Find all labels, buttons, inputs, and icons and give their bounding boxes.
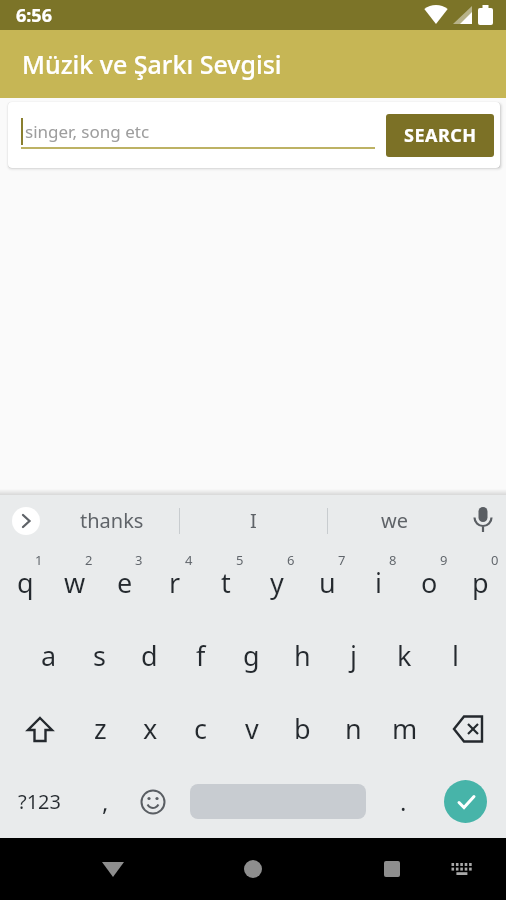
button[interactable] [89, 845, 137, 893]
button[interactable]: singer, song etc [8, 102, 386, 168]
button[interactable] [368, 845, 416, 893]
button[interactable]: g [226, 619, 277, 692]
button[interactable]: k [379, 619, 430, 692]
staticText: q [17, 564, 34, 601]
button[interactable] [174, 765, 382, 838]
staticText: 9 [440, 551, 448, 569]
button[interactable]: z [75, 692, 125, 765]
staticText: 4 [185, 551, 193, 569]
staticText: . [400, 785, 407, 818]
staticText: l [452, 637, 459, 674]
button[interactable] [229, 845, 277, 893]
staticText: p [472, 564, 489, 601]
button[interactable] [460, 495, 506, 546]
staticText: e [117, 564, 133, 601]
staticText: thanks [80, 507, 144, 534]
button[interactable]: q [0, 546, 50, 619]
button[interactable]: SEARCH [386, 114, 494, 157]
button[interactable]: l [430, 619, 481, 692]
staticText: n [345, 710, 362, 747]
staticText: d [141, 637, 158, 674]
button[interactable]: t [200, 546, 251, 619]
staticText: t [221, 564, 231, 601]
staticText: g [243, 637, 260, 674]
staticText: we [381, 507, 408, 534]
button[interactable]: y [251, 546, 302, 619]
staticText: 3 [135, 551, 143, 569]
staticText: 1 [35, 551, 43, 569]
staticText: y [270, 564, 284, 601]
staticText: x [143, 710, 158, 747]
staticText: k [397, 637, 412, 674]
button[interactable]: I [180, 495, 327, 546]
button[interactable]: e [100, 546, 150, 619]
button[interactable]: r [150, 546, 200, 619]
staticText: u [319, 564, 336, 601]
staticText: m [392, 710, 418, 747]
button[interactable]: b [277, 692, 328, 765]
button[interactable]: w [50, 546, 100, 619]
button[interactable]: x [125, 692, 175, 765]
staticText: h [294, 637, 311, 674]
button[interactable] [12, 507, 40, 535]
button[interactable]: u [302, 546, 353, 619]
button[interactable]: a [24, 619, 74, 692]
button[interactable]: d [124, 619, 175, 692]
button[interactable]: o [404, 546, 455, 619]
button[interactable]: j [328, 619, 379, 692]
staticText: singer, song etc [25, 120, 150, 143]
button[interactable]: i [353, 546, 404, 619]
staticText: SEARCH [404, 123, 477, 148]
staticText: o [421, 564, 438, 601]
staticText: ?123 [18, 788, 61, 815]
button[interactable]: ?123 [0, 765, 78, 838]
staticText: b [294, 710, 311, 747]
staticText: r [169, 564, 181, 601]
staticText: 7 [338, 551, 346, 569]
staticText: I [250, 507, 257, 534]
staticText: , [102, 785, 109, 818]
staticText: 6 [287, 551, 295, 569]
button[interactable]: h [277, 619, 328, 692]
staticText: z [94, 710, 107, 747]
staticText: w [64, 564, 86, 601]
staticText: s [93, 637, 106, 674]
staticText: 0 [491, 551, 499, 569]
staticText: v [245, 710, 259, 747]
button[interactable] [440, 847, 484, 891]
button[interactable]: n [328, 692, 379, 765]
button[interactable]: p [455, 546, 506, 619]
button[interactable] [132, 765, 174, 838]
staticText: 5 [236, 551, 244, 569]
button[interactable] [430, 692, 506, 765]
staticText: f [196, 637, 206, 674]
button[interactable]: . [382, 765, 424, 838]
button[interactable]: f [175, 619, 226, 692]
button[interactable]: thanks [45, 495, 179, 546]
staticText: 8 [389, 551, 397, 569]
button[interactable]: m [379, 692, 430, 765]
button[interactable]: s [74, 619, 124, 692]
button[interactable] [424, 765, 506, 838]
button[interactable]: v [226, 692, 277, 765]
staticText: 6:56 [16, 3, 52, 28]
staticText: 2 [85, 551, 93, 569]
button[interactable]: , [78, 765, 132, 838]
staticText: i [375, 564, 382, 601]
button[interactable]: we [328, 495, 460, 546]
staticText: j [350, 637, 357, 674]
staticText: c [194, 710, 207, 747]
staticText: a [41, 637, 57, 674]
button[interactable]: c [175, 692, 226, 765]
staticText: Müzik ve Şarkı Sevgisi [22, 47, 282, 81]
button[interactable] [0, 692, 75, 765]
